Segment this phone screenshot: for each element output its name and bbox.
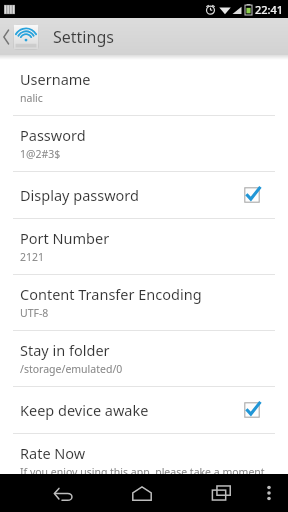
button[interactable]: Back — [40, 474, 86, 512]
staticText: Display password — [20, 185, 243, 205]
button[interactable]: Content Transfer Encoding — [0, 275, 288, 330]
button[interactable]: Password — [0, 116, 288, 171]
staticText: 22:41 — [255, 2, 284, 17]
staticText: UTF-8 — [20, 306, 49, 320]
button[interactable]: Recent apps — [198, 474, 244, 512]
staticText: Stay in folder — [20, 340, 110, 360]
button[interactable]: Display password — [0, 172, 288, 218]
staticText: Keep device awake — [20, 400, 243, 420]
staticText: Rate Now — [20, 443, 86, 463]
other: Checked — [243, 401, 261, 419]
staticText: Port Number — [20, 228, 110, 248]
button[interactable]: More options — [254, 478, 284, 508]
button[interactable]: Username — [0, 60, 288, 115]
button[interactable]: Port Number — [0, 219, 288, 274]
button[interactable]: Navigate up — [0, 24, 41, 50]
staticText: Password — [20, 125, 86, 145]
button[interactable]: Keep device awake — [0, 387, 288, 433]
staticText: If you enjoy using this app, please take… — [20, 465, 272, 474]
staticText: Content Transfer Encoding — [20, 284, 202, 304]
staticText: Username — [20, 69, 91, 89]
staticText: 1@2#3$ — [20, 147, 61, 161]
staticText: 2121 — [20, 250, 45, 264]
button[interactable]: Home — [119, 474, 165, 512]
button[interactable]: Stay in folder — [0, 331, 288, 386]
other: Checked — [243, 186, 261, 204]
button[interactable]: Rate Now — [0, 434, 288, 474]
staticText: /storage/emulated/0 — [20, 362, 123, 376]
staticText: nalic — [20, 91, 43, 105]
staticText: Settings — [53, 26, 114, 48]
